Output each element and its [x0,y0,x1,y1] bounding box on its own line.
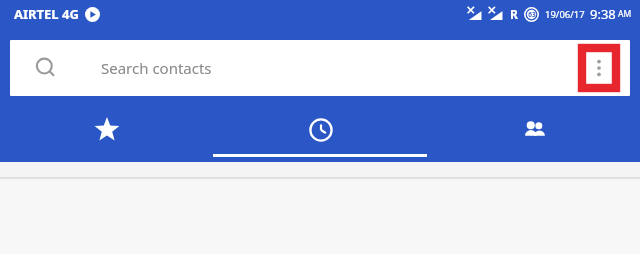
staticText: AM [618,8,632,20]
button[interactable]: Search contacts [10,40,630,96]
staticText: 63 [528,10,536,19]
button[interactable]: More options [582,48,616,88]
button[interactable]: Recents [214,106,427,154]
staticText: R [510,6,518,22]
staticText: 9:38 [590,5,616,23]
staticText: Search contacts [101,58,212,78]
staticText: AIRTEL 4G [14,5,79,23]
button[interactable]: Contacts [427,106,640,154]
button[interactable]: Favorites [0,106,214,154]
staticText: 19/06/17 [545,8,585,21]
